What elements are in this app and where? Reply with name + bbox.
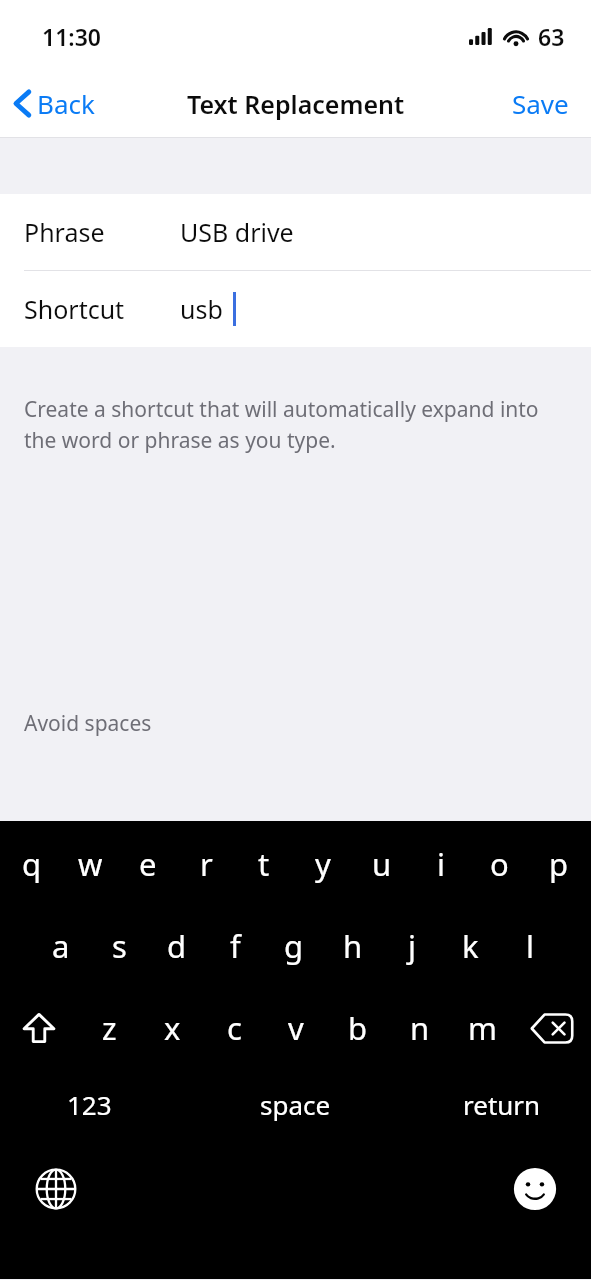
- button[interactable]: Phrase: [0, 194, 591, 270]
- staticText: m: [468, 1007, 497, 1049]
- button[interactable]: Backspace: [513, 1001, 591, 1055]
- staticText: u: [372, 843, 392, 885]
- staticText: Shortcut: [24, 292, 125, 326]
- staticText: c: [227, 1007, 242, 1049]
- staticText: 63: [538, 21, 565, 52]
- staticText: o: [490, 843, 509, 885]
- staticText: p: [549, 843, 569, 885]
- button[interactable]: p: [529, 837, 588, 891]
- staticText: h: [343, 925, 363, 967]
- staticText: space: [260, 1087, 331, 1122]
- staticText: Save: [512, 86, 569, 121]
- staticText: Create a shortcut that will automaticall…: [24, 395, 561, 454]
- staticText: USB drive: [180, 215, 294, 249]
- button[interactable]: f: [206, 919, 264, 973]
- staticText: Avoid spaces: [24, 709, 152, 738]
- button[interactable]: return: [412, 1079, 591, 1129]
- button[interactable]: r: [177, 837, 235, 891]
- button[interactable]: Emoji: [507, 1161, 563, 1217]
- staticText: d: [167, 925, 187, 967]
- staticText: v: [288, 1007, 304, 1049]
- button[interactable]: b: [327, 1001, 389, 1055]
- button[interactable]: g: [264, 919, 323, 973]
- button[interactable]: m: [451, 1001, 513, 1055]
- staticText: g: [284, 925, 304, 967]
- staticText: l: [526, 925, 534, 967]
- button[interactable]: l: [500, 919, 559, 973]
- button[interactable]: Shift: [0, 1001, 78, 1055]
- staticText: i: [437, 843, 445, 885]
- button[interactable]: u: [352, 837, 411, 891]
- button[interactable]: i: [411, 837, 470, 891]
- button[interactable]: y: [293, 837, 352, 891]
- button[interactable]: d: [148, 919, 206, 973]
- staticText: k: [462, 925, 479, 967]
- staticText: b: [348, 1007, 368, 1049]
- staticText: x: [164, 1007, 181, 1049]
- button[interactable]: 123: [0, 1079, 179, 1129]
- staticText: return: [463, 1087, 541, 1122]
- button[interactable]: k: [441, 919, 500, 973]
- button[interactable]: t: [235, 837, 293, 891]
- staticText: Text Replacement: [187, 87, 405, 121]
- staticText: t: [258, 843, 270, 885]
- button[interactable]: Back: [0, 78, 107, 129]
- staticText: w: [78, 843, 103, 885]
- button[interactable]: x: [141, 1001, 203, 1055]
- button[interactable]: e: [119, 837, 177, 891]
- button[interactable]: Shortcut: [0, 271, 591, 347]
- button[interactable]: q: [3, 837, 61, 891]
- button[interactable]: o: [470, 837, 529, 891]
- button[interactable]: z: [78, 1001, 141, 1055]
- button[interactable]: Save: [490, 76, 591, 131]
- staticText: s: [112, 925, 127, 967]
- button[interactable]: s: [90, 919, 148, 973]
- staticText: q: [22, 843, 42, 885]
- button[interactable]: Switch keyboard: [28, 1161, 84, 1217]
- button[interactable]: w: [61, 837, 119, 891]
- button[interactable]: space: [179, 1079, 412, 1129]
- button[interactable]: a: [32, 919, 90, 973]
- staticText: usb: [180, 292, 223, 326]
- staticText: a: [52, 925, 70, 967]
- staticText: n: [410, 1007, 430, 1049]
- button[interactable]: v: [265, 1001, 327, 1055]
- staticText: e: [139, 843, 157, 885]
- button[interactable]: h: [323, 919, 382, 973]
- staticText: r: [200, 843, 213, 885]
- staticText: f: [230, 925, 241, 967]
- staticText: j: [408, 925, 416, 967]
- staticText: Phrase: [24, 215, 105, 249]
- button[interactable]: j: [382, 919, 441, 973]
- staticText: 123: [67, 1087, 112, 1122]
- staticText: y: [315, 843, 331, 885]
- staticText: 11:30: [42, 21, 101, 52]
- staticText: Back: [37, 86, 95, 121]
- staticText: z: [102, 1007, 117, 1049]
- button[interactable]: n: [389, 1001, 451, 1055]
- button[interactable]: c: [203, 1001, 265, 1055]
